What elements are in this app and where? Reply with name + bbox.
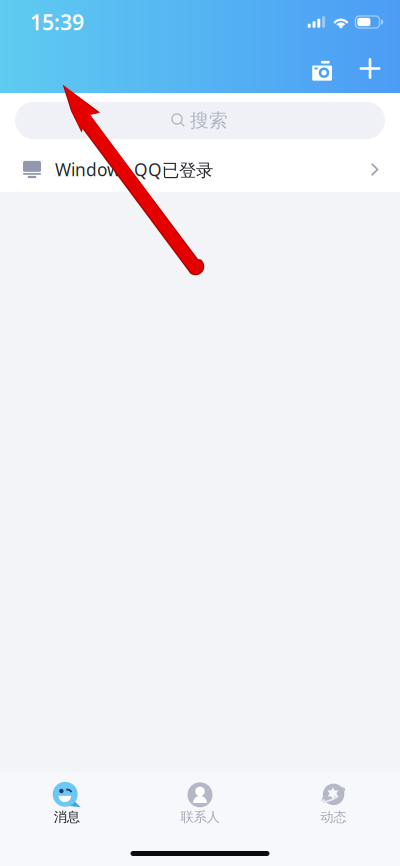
button[interactable]: Windows QQ已登录 [0, 147, 400, 192]
button[interactable]: 搜索 [15, 102, 385, 139]
staticText: 搜索 [190, 109, 228, 132]
button[interactable]: 消息 [0, 772, 133, 827]
staticText: 动态 [320, 809, 346, 825]
staticText: 消息 [54, 809, 80, 825]
staticText: Windows QQ已登录 [55, 158, 213, 181]
button[interactable]: 联系人 [133, 772, 267, 827]
button[interactable]: 动态 [267, 772, 400, 827]
staticText: 15:39 [30, 8, 84, 36]
button[interactable]: Add [359, 57, 381, 79]
staticText: 联系人 [180, 809, 219, 825]
button[interactable]: Camera [312, 59, 332, 78]
